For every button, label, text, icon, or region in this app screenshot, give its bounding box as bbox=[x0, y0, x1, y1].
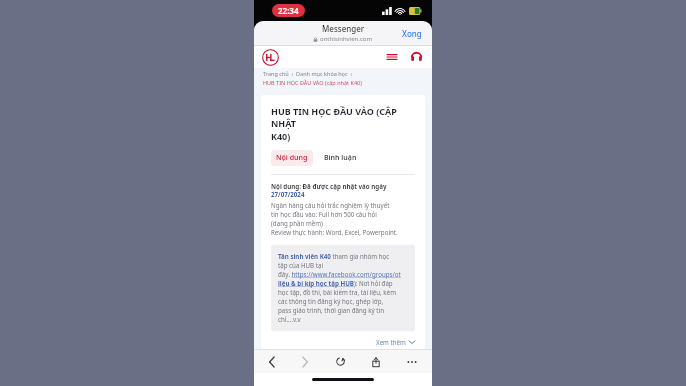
button[interactable]: Bình luận bbox=[320, 150, 361, 166]
staticText: Tân sinh viên K40 tham gia nhóm học tập … bbox=[278, 252, 401, 324]
button[interactable]: Xem thêm bbox=[271, 338, 415, 346]
button[interactable]: Menu bbox=[385, 51, 399, 63]
staticText: Xem thêm bbox=[376, 338, 406, 346]
button[interactable]: Xong bbox=[400, 26, 424, 41]
staticText: onthisinhvien.com bbox=[320, 35, 373, 43]
staticText: Messenger bbox=[322, 23, 365, 34]
staticText: HUB TIN HỌC ĐẦU VÀO (CẬP NHẬT K40) bbox=[271, 105, 415, 143]
button[interactable]: Hỗ trợ bbox=[410, 51, 423, 63]
button[interactable]: Forward bbox=[299, 354, 311, 370]
button[interactable]: Share bbox=[369, 354, 383, 370]
button[interactable]: More bbox=[404, 357, 420, 367]
button[interactable]: Back bbox=[266, 354, 278, 370]
button[interactable]: Nội dung bbox=[271, 150, 313, 166]
staticText: Nội dung: Đã được cập nhật vào ngày 27/0… bbox=[271, 182, 387, 198]
staticText: Bình luận bbox=[324, 153, 357, 163]
staticText: Trang chủ › Danh mục khóa học › bbox=[263, 70, 353, 77]
button[interactable]: Reload bbox=[333, 354, 348, 369]
staticText: HUB TIN HỌC ĐẦU VÀO (cập nhật K40) bbox=[263, 79, 362, 86]
button[interactable]: Trang chủ bbox=[262, 49, 279, 66]
staticText: 22:34 bbox=[278, 5, 299, 16]
staticText: Xong bbox=[402, 28, 422, 39]
staticText: Ngân hàng câu hỏi trắc nghiệm lý thuyết … bbox=[271, 201, 398, 237]
staticText: Nội dung bbox=[276, 153, 308, 163]
